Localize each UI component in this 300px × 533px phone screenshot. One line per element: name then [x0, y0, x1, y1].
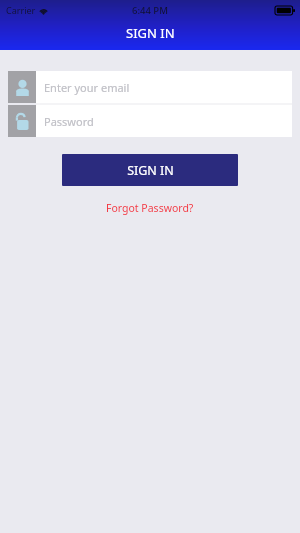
staticText: Forgot Password? [106, 201, 194, 215]
button[interactable]: Enter your email [8, 71, 292, 103]
staticText: Carrier [6, 4, 36, 16]
staticText: SIGN IN [126, 24, 175, 42]
staticText: Enter your email [44, 80, 130, 95]
staticText: 6:44 PM [132, 4, 168, 17]
button[interactable]: Password [8, 105, 292, 137]
staticText: Password [44, 114, 94, 129]
staticText: SIGN IN [127, 162, 174, 179]
button[interactable]: Forgot Password? [98, 199, 202, 217]
button[interactable]: SIGN IN [62, 154, 238, 186]
